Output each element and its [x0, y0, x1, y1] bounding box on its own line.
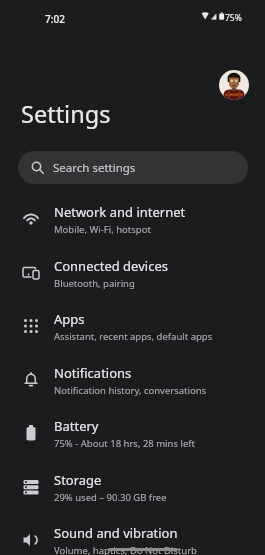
- staticText: Volume, haptics, Do Not Disturb: [54, 544, 197, 555]
- staticText: Sound and vibration: [54, 524, 178, 542]
- staticText: Storage: [54, 471, 102, 489]
- button[interactable]: Connected devices: [0, 246, 265, 300]
- staticText: Mobile, Wi-Fi, hotspot: [54, 223, 151, 236]
- button[interactable]: Sound and vibration: [0, 513, 265, 555]
- button[interactable]: Notifications: [0, 353, 265, 407]
- staticText: Apps: [54, 310, 85, 328]
- staticText: Battery: [54, 417, 99, 435]
- staticText: Notifications: [54, 364, 132, 382]
- staticText: Settings: [21, 98, 111, 130]
- staticText: 29% used – 90.30 GB free: [54, 491, 167, 504]
- button[interactable]: [219, 70, 249, 100]
- button[interactable]: Network and internet: [0, 192, 265, 246]
- staticText: 75% - About 18 hrs, 28 mins left: [54, 437, 195, 450]
- staticText: Assistant, recent apps, default apps: [54, 330, 213, 343]
- staticText: Notification history, conversations: [54, 384, 207, 397]
- staticText: Bluetooth, pairing: [54, 277, 135, 290]
- staticText: Search settings: [53, 160, 136, 176]
- button[interactable]: Apps: [0, 299, 265, 353]
- staticText: Network and internet: [54, 203, 186, 221]
- staticText: 75%: [225, 12, 242, 24]
- button[interactable]: Storage: [0, 460, 265, 514]
- staticText: Connected devices: [54, 257, 168, 275]
- button[interactable]: Battery: [0, 406, 265, 460]
- staticText: 7:02: [45, 12, 65, 26]
- button[interactable]: Search settings: [18, 151, 248, 184]
